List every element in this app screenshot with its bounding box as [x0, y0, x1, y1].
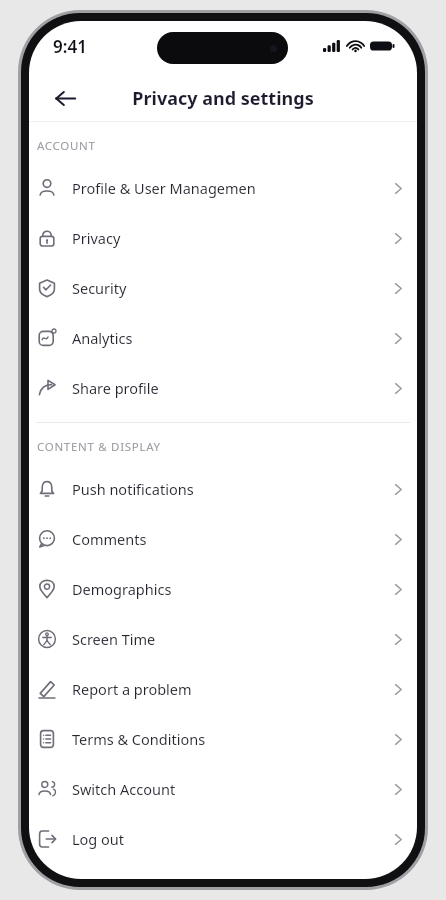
button[interactable]: Report a problem	[29, 664, 417, 714]
button[interactable]: Analytics	[29, 313, 417, 363]
staticText: Privacy	[72, 228, 121, 248]
button[interactable]: Switch Account	[29, 764, 417, 814]
button[interactable]: Profile & User Managemen	[29, 163, 417, 213]
staticText: Privacy and settings	[132, 86, 314, 111]
staticText: 9:41	[53, 35, 87, 58]
staticText: Demographics	[72, 579, 172, 599]
button[interactable]: Share profile	[29, 363, 417, 413]
button[interactable]: Demographics	[29, 564, 417, 614]
button[interactable]: Terms & Conditions	[29, 714, 417, 764]
staticText: Profile & User Managemen	[72, 178, 256, 198]
button[interactable]: Comments	[29, 514, 417, 564]
staticText: Switch Account	[72, 779, 176, 799]
button[interactable]: Security	[29, 263, 417, 313]
staticText: Push notifications	[72, 479, 194, 499]
staticText: Report a problem	[72, 679, 192, 699]
button[interactable]: Screen Time	[29, 614, 417, 664]
staticText: Screen Time	[72, 629, 156, 649]
button[interactable]: Back	[43, 76, 87, 120]
staticText: Security	[72, 278, 127, 298]
staticText: Log out	[72, 829, 125, 849]
staticText: Analytics	[72, 328, 133, 348]
staticText: ACCOUNT	[37, 138, 96, 154]
button[interactable]: Push notifications	[29, 464, 417, 514]
staticText: CONTENT & DISPLAY	[37, 439, 161, 455]
staticText: Share profile	[72, 378, 159, 398]
staticText: Comments	[72, 529, 147, 549]
button[interactable]: Privacy	[29, 213, 417, 263]
staticText: Terms & Conditions	[72, 729, 206, 749]
button[interactable]: Log out	[29, 814, 417, 864]
